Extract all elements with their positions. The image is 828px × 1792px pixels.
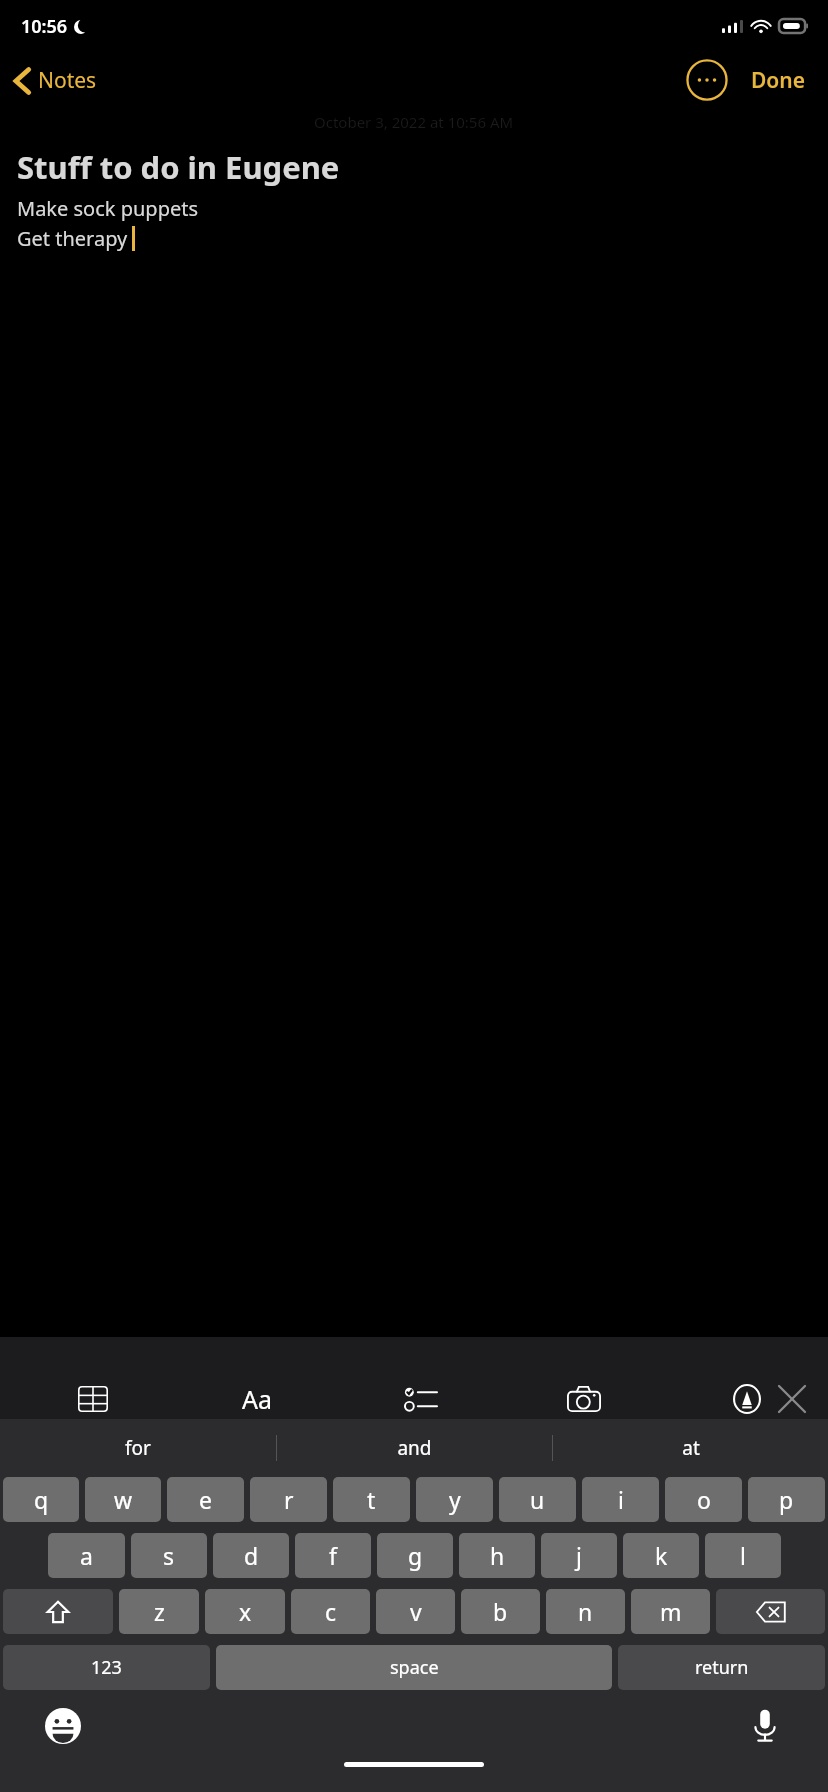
- button[interactable]: b: [461, 1589, 540, 1634]
- staticText: October 3, 2022 at 10:56 AM: [314, 112, 514, 132]
- button[interactable]: y: [416, 1477, 493, 1522]
- button[interactable]: c: [291, 1589, 370, 1634]
- button[interactable]: Close keyboard: [770, 1379, 814, 1419]
- staticText: space: [390, 1655, 439, 1680]
- staticText: return: [695, 1655, 749, 1680]
- button[interactable]: v: [376, 1589, 455, 1634]
- staticText: q: [34, 1484, 49, 1515]
- staticText: for: [125, 1435, 151, 1461]
- button[interactable]: s: [131, 1533, 207, 1578]
- staticText: g: [408, 1540, 423, 1571]
- button[interactable]: Emoji: [42, 1705, 84, 1747]
- button[interactable]: Shift: [3, 1589, 113, 1634]
- staticText: d: [244, 1540, 259, 1571]
- staticText: i: [618, 1484, 624, 1515]
- staticText: 123: [91, 1655, 122, 1680]
- staticText: p: [779, 1484, 794, 1515]
- staticText: Notes: [38, 66, 97, 95]
- staticText: t: [367, 1484, 376, 1515]
- staticText: 10:56: [21, 14, 68, 39]
- button[interactable]: Checklist: [397, 1379, 443, 1419]
- button[interactable]: m: [631, 1589, 710, 1634]
- staticText: a: [80, 1540, 93, 1571]
- button[interactable]: j: [541, 1533, 617, 1578]
- button[interactable]: Camera: [561, 1379, 607, 1419]
- staticText: Stuff to do in Eugene: [17, 146, 340, 188]
- staticText: w: [114, 1484, 133, 1515]
- button[interactable]: Dictation: [744, 1705, 786, 1747]
- button[interactable]: l: [705, 1533, 781, 1578]
- staticText: y: [449, 1484, 461, 1515]
- button[interactable]: o: [665, 1477, 742, 1522]
- button[interactable]: z: [119, 1589, 199, 1634]
- staticText: e: [199, 1484, 212, 1515]
- button[interactable]: f: [295, 1533, 371, 1578]
- button[interactable]: g: [377, 1533, 453, 1578]
- button[interactable]: Table: [70, 1379, 116, 1419]
- button[interactable]: r: [250, 1477, 327, 1522]
- button[interactable]: e: [167, 1477, 244, 1522]
- staticText: m: [660, 1596, 682, 1627]
- staticText: c: [325, 1596, 337, 1627]
- button[interactable]: 123: [3, 1645, 210, 1690]
- button[interactable]: Text format: [234, 1379, 280, 1419]
- button[interactable]: for: [0, 1419, 276, 1477]
- button[interactable]: return: [618, 1645, 825, 1690]
- staticText: z: [154, 1596, 165, 1627]
- button[interactable]: h: [459, 1533, 535, 1578]
- staticText: Aa: [242, 1382, 273, 1416]
- staticText: j: [576, 1540, 582, 1571]
- button[interactable]: space: [216, 1645, 612, 1690]
- button[interactable]: Done: [747, 60, 810, 101]
- staticText: Make sock puppets: [17, 195, 199, 222]
- button[interactable]: k: [623, 1533, 699, 1578]
- staticText: Done: [751, 66, 806, 95]
- staticText: Get therapy: [17, 225, 128, 252]
- button[interactable]: x: [205, 1589, 285, 1634]
- button[interactable]: d: [213, 1533, 289, 1578]
- staticText: l: [740, 1540, 746, 1571]
- button[interactable]: Notes: [0, 60, 107, 101]
- button[interactable]: w: [85, 1477, 161, 1522]
- staticText: at: [682, 1435, 700, 1461]
- staticText: h: [490, 1540, 505, 1571]
- button[interactable]: and: [277, 1419, 552, 1477]
- staticText: u: [530, 1484, 545, 1515]
- staticText: n: [578, 1596, 593, 1627]
- staticText: k: [655, 1540, 668, 1571]
- button[interactable]: a: [48, 1533, 125, 1578]
- button[interactable]: More options: [685, 58, 729, 102]
- button[interactable]: u: [499, 1477, 576, 1522]
- staticText: v: [410, 1596, 422, 1627]
- button[interactable]: at: [553, 1419, 828, 1477]
- staticText: x: [239, 1596, 252, 1627]
- button[interactable]: p: [748, 1477, 825, 1522]
- staticText: f: [329, 1540, 337, 1571]
- button[interactable]: q: [3, 1477, 79, 1522]
- button[interactable]: n: [546, 1589, 625, 1634]
- button[interactable]: Markup: [724, 1379, 770, 1419]
- staticText: and: [397, 1435, 432, 1461]
- staticText: r: [284, 1484, 294, 1515]
- button[interactable]: i: [582, 1477, 659, 1522]
- staticText: o: [697, 1484, 711, 1515]
- staticText: b: [493, 1596, 508, 1627]
- button[interactable]: t: [333, 1477, 410, 1522]
- staticText: s: [163, 1540, 175, 1571]
- button[interactable]: Backspace: [716, 1589, 825, 1634]
